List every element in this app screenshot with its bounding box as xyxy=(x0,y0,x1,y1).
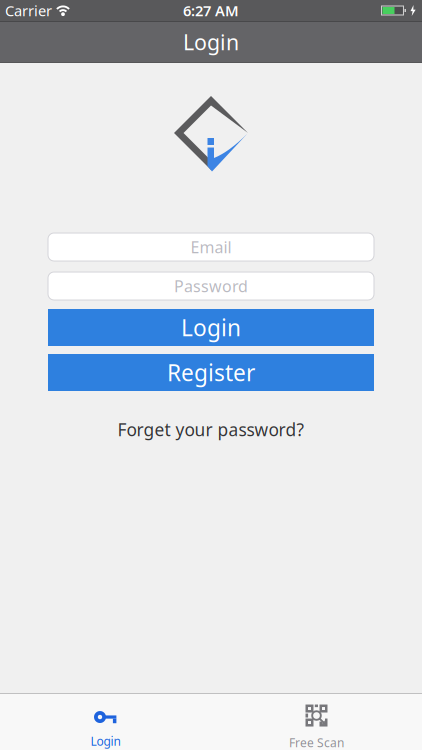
staticText: Forget your password? xyxy=(117,418,304,441)
button[interactable]: Register xyxy=(48,354,374,391)
staticText: Login xyxy=(90,733,120,749)
button[interactable]: Login xyxy=(48,309,374,346)
button[interactable]: Password xyxy=(48,272,374,300)
button[interactable]: Forget your password? xyxy=(117,418,304,441)
staticText: Email xyxy=(190,236,231,258)
staticText: Carrier xyxy=(5,1,52,20)
button[interactable]: Email xyxy=(48,233,374,261)
staticText: 6:27 AM xyxy=(183,1,239,20)
staticText: Register xyxy=(167,357,255,387)
staticText: Free Scan xyxy=(289,734,344,750)
staticText: Login xyxy=(181,312,241,342)
button[interactable]: Free Scan xyxy=(211,694,422,749)
staticText: Password xyxy=(174,275,248,297)
staticText: Login xyxy=(183,28,239,56)
button[interactable]: Login xyxy=(0,694,211,749)
